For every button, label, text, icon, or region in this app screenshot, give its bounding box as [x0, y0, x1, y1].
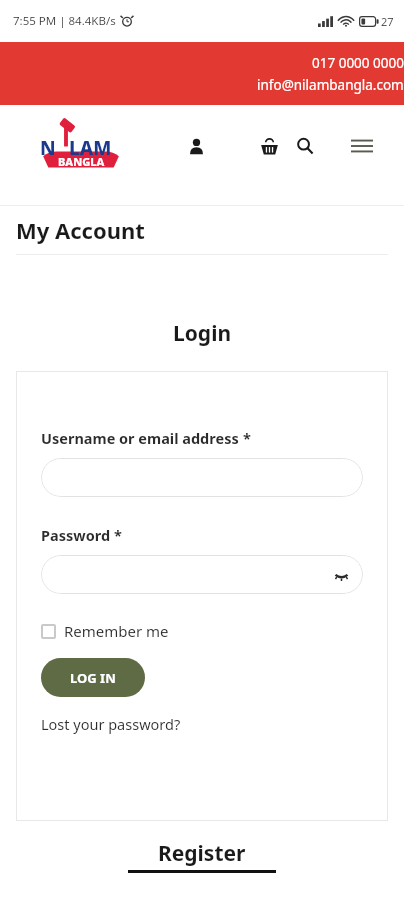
staticText: Register — [158, 839, 246, 868]
staticText: info@nilambangla.com — [257, 76, 404, 94]
staticText: Login — [173, 319, 232, 348]
button[interactable]: Menu — [344, 128, 380, 164]
staticText: 017 0000 0000 — [312, 54, 404, 72]
button[interactable]: Cart — [252, 129, 286, 163]
staticText: * — [114, 525, 122, 545]
staticText: 7:55 PM | 84.4KB/s — [13, 13, 116, 29]
button[interactable]: Show password — [331, 565, 351, 585]
staticText: My Account — [16, 215, 145, 245]
button[interactable]: Register — [158, 839, 246, 868]
button[interactable]: Account — [178, 128, 214, 164]
button[interactable]: Search — [288, 129, 322, 163]
staticText: Remember me — [64, 621, 169, 641]
staticText: N — [40, 135, 56, 161]
staticText: Lost your password? — [41, 714, 181, 734]
staticText: LOG IN — [70, 669, 116, 687]
button[interactable] — [41, 458, 363, 497]
staticText: Username or email address — [41, 428, 243, 448]
button[interactable]: LOG IN — [41, 658, 145, 697]
button[interactable]: Show password — [41, 555, 363, 594]
button[interactable]: Lost your password? — [41, 714, 181, 734]
staticText: Password — [41, 525, 114, 545]
button[interactable]: N — [38, 119, 124, 173]
staticText: 27 — [381, 14, 394, 29]
staticText: * — [243, 428, 251, 448]
staticText: LAM — [69, 135, 112, 161]
staticText: BANGLA — [58, 154, 105, 169]
button[interactable]: Remember me — [41, 621, 169, 641]
